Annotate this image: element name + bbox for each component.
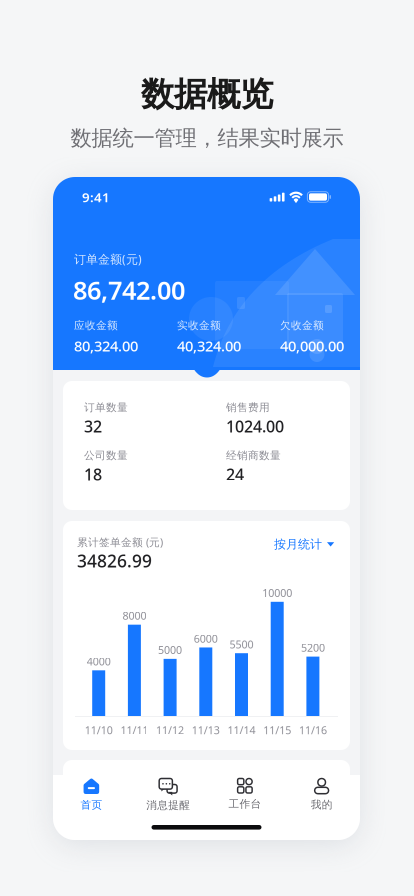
staticText: 4000 — [87, 654, 111, 668]
staticText: 1024.00 — [226, 416, 284, 437]
staticText: 6000 — [194, 631, 218, 646]
staticText: 数据概览 — [141, 74, 273, 115]
staticText: 80,324.00 — [74, 336, 138, 356]
staticText: 5500 — [229, 637, 253, 651]
staticText: 公司数量 — [84, 449, 128, 462]
staticText: 我的 — [311, 798, 333, 811]
staticText: 订单数量 — [84, 401, 128, 414]
staticText: 8000 — [122, 609, 146, 623]
staticText: 32 — [84, 416, 102, 437]
staticText: 实收金额 — [177, 319, 221, 332]
staticText: 首页 — [80, 798, 102, 812]
button[interactable]: 工作台 — [206, 778, 283, 814]
staticText: 11/14 — [227, 723, 255, 737]
staticText: 40,000.00 — [280, 336, 344, 356]
staticText: 5200 — [301, 641, 325, 655]
staticText: 10000 — [262, 586, 292, 600]
staticText: 按月统计 — [274, 537, 322, 552]
staticText: 应收金额 — [74, 319, 118, 332]
staticText: 11/11 — [120, 723, 148, 737]
staticText: 40,324.00 — [177, 336, 241, 356]
staticText: 5000 — [158, 643, 182, 657]
button[interactable]: 首页 — [53, 778, 130, 814]
staticText: 86,742.00 — [73, 273, 185, 307]
staticText: 11/10 — [85, 723, 113, 737]
staticText: 11/12 — [156, 723, 184, 737]
staticText: 24 — [226, 464, 244, 485]
staticText: 累计签单金额 (元) — [77, 535, 163, 549]
staticText: 消息提醒 — [146, 799, 190, 812]
staticText: 34826.99 — [77, 549, 152, 572]
staticText: 11/16 — [299, 723, 327, 737]
staticText: 11/15 — [263, 723, 291, 737]
staticText: 9:41 — [82, 188, 110, 206]
staticText: 数据统一管理，结果实时展示 — [70, 125, 343, 151]
staticText: 欠收金额 — [280, 319, 324, 332]
staticText: 销售费用 — [226, 401, 270, 414]
button[interactable]: 我的 — [283, 778, 360, 814]
staticText: 18 — [84, 464, 102, 485]
button[interactable]: 按月统计 — [269, 532, 339, 557]
staticText: 11/13 — [192, 723, 220, 737]
staticText: 订单金额(元) — [74, 251, 142, 267]
staticText: 工作台 — [228, 797, 261, 811]
staticText: 经销商数量 — [226, 449, 281, 462]
button[interactable]: 消息提醒 — [130, 778, 207, 814]
